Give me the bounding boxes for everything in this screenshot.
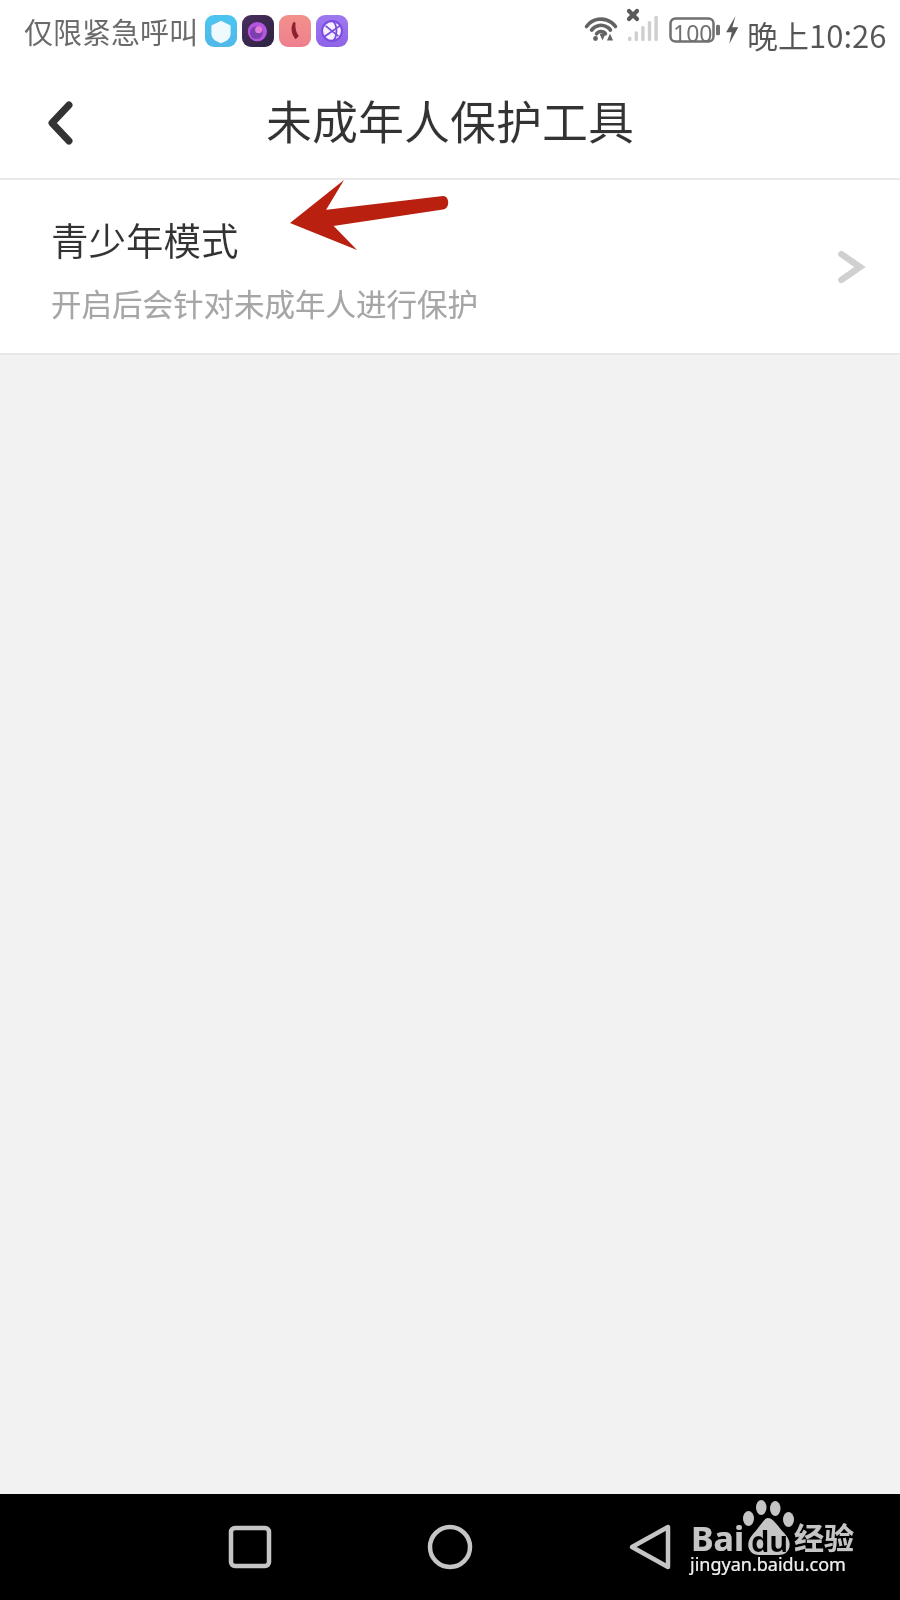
- staticText: 经验: [794, 1514, 854, 1557]
- staticText: jingyan.baidu.com: [690, 1552, 846, 1577]
- staticText: 未成年人保护工具: [266, 86, 634, 153]
- staticText: 100: [673, 17, 713, 43]
- staticText: Bai: [691, 1515, 745, 1561]
- button[interactable]: 青少年模式: [0, 180, 900, 353]
- staticText: 晚上10:26: [747, 12, 887, 57]
- staticText: 开启后会针对未成年人进行保护: [51, 281, 478, 325]
- button[interactable]: Recents: [211, 1508, 289, 1586]
- staticText: 仅限紧急呼叫: [24, 10, 199, 52]
- staticText: du: [751, 1521, 789, 1560]
- button[interactable]: Back: [28, 86, 90, 148]
- button[interactable]: Back: [611, 1508, 689, 1586]
- staticText: 青少年模式: [51, 211, 239, 265]
- button[interactable]: Home: [411, 1508, 489, 1586]
